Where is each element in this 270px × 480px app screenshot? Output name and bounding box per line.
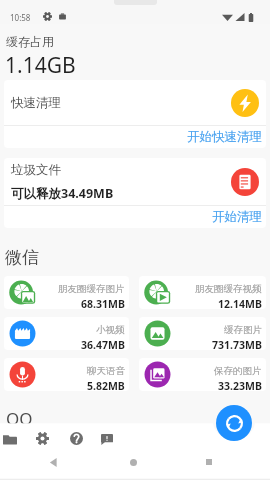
- button[interactable]: 保存的图片: [139, 358, 266, 391]
- staticText: 可以释放34.49MB: [11, 185, 114, 202]
- staticText: 缓存图片: [224, 324, 262, 336]
- staticText: 开始快速清理: [187, 129, 262, 145]
- button[interactable]: 开始快速清理: [4, 126, 266, 148]
- button[interactable]: 缓存图片: [139, 317, 266, 350]
- staticText: 保存的图片: [214, 365, 262, 377]
- staticText: 垃圾文件: [11, 162, 61, 178]
- button[interactable]: Refresh: [216, 405, 252, 441]
- staticText: 36.47MB: [81, 338, 125, 350]
- staticText: 快速清理: [11, 95, 61, 111]
- staticText: QQ: [6, 407, 33, 430]
- staticText: 朋友圈缓存视频: [195, 283, 262, 295]
- button[interactable]: Settings: [28, 424, 56, 452]
- button[interactable]: Help: [62, 424, 90, 452]
- button[interactable]: 朋友圈缓存视频: [139, 276, 266, 309]
- staticText: 小视频: [96, 324, 125, 336]
- button[interactable]: 聊天语音: [4, 358, 129, 391]
- staticText: 68.31MB: [81, 297, 125, 309]
- button[interactable]: 开始清理: [4, 206, 266, 228]
- staticText: 朋友圈缓存图片: [58, 283, 125, 295]
- button[interactable]: 快速清理: [4, 80, 266, 125]
- button[interactable]: Feedback: [93, 425, 121, 453]
- staticText: 1.14GB: [5, 51, 76, 80]
- staticText: 聊天语音: [87, 365, 125, 377]
- staticText: 微信: [5, 247, 39, 268]
- staticText: 5.82MB: [87, 379, 125, 391]
- staticText: 开始清理: [212, 209, 262, 225]
- staticText: 33.23MB: [218, 379, 262, 391]
- staticText: 12.14MB: [218, 297, 262, 309]
- staticText: 731.73MB: [212, 338, 262, 350]
- button[interactable]: 朋友圈缓存图片: [4, 276, 129, 309]
- button[interactable]: 小视频: [4, 317, 129, 350]
- staticText: 10:58: [10, 12, 31, 23]
- staticText: 缓存占用: [6, 34, 54, 49]
- button[interactable]: Files: [0, 426, 24, 454]
- button[interactable]: 垃圾文件: [4, 158, 266, 205]
